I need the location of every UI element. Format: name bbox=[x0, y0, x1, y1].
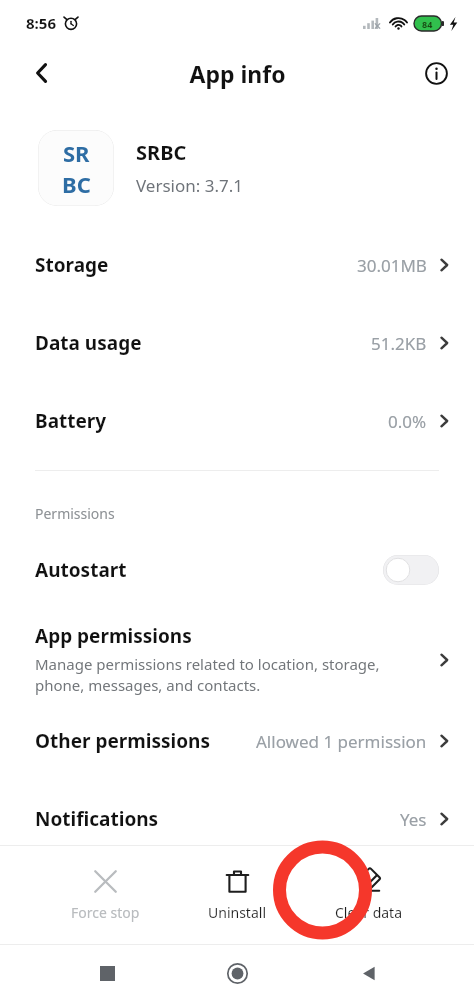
button[interactable]: Back bbox=[18, 49, 66, 97]
button[interactable]: About bbox=[414, 51, 458, 95]
staticText: BC bbox=[62, 169, 91, 199]
staticText: Data usage bbox=[35, 330, 142, 356]
staticText: Notifications bbox=[35, 806, 159, 832]
staticText: Other permissions bbox=[35, 728, 210, 754]
staticText: 0.0% bbox=[388, 410, 427, 433]
staticText: SR bbox=[63, 138, 90, 168]
staticText: 8:56 bbox=[26, 13, 56, 33]
button[interactable]: Battery bbox=[0, 402, 474, 440]
button[interactable]: Clear data bbox=[324, 864, 414, 926]
staticText: Manage permissions related to location, … bbox=[35, 654, 380, 696]
button[interactable]: Back bbox=[344, 949, 392, 997]
staticText: 51.2KB bbox=[371, 332, 427, 355]
button[interactable]: App permissions bbox=[0, 619, 474, 700]
button[interactable]: Home bbox=[213, 949, 261, 997]
button[interactable]: Storage bbox=[0, 246, 474, 284]
staticText: Yes bbox=[400, 808, 427, 831]
staticText: Storage bbox=[35, 252, 109, 278]
staticText: Force stop bbox=[71, 903, 140, 922]
staticText: Battery bbox=[35, 408, 107, 434]
staticText: Uninstall bbox=[208, 903, 266, 922]
staticText: 84 bbox=[422, 18, 433, 30]
button[interactable]: Autostart bbox=[0, 551, 474, 589]
button[interactable]: Uninstall bbox=[192, 864, 282, 926]
staticText: App permissions bbox=[35, 623, 192, 649]
button[interactable]: Other permissions bbox=[0, 722, 474, 760]
button[interactable]: Data usage bbox=[0, 324, 474, 362]
button[interactable]: Notifications bbox=[0, 800, 474, 838]
staticText: 30.01MB bbox=[357, 254, 427, 277]
button[interactable]: Force stop bbox=[60, 864, 150, 926]
button[interactable]: Recents bbox=[83, 949, 131, 997]
staticText: Clear data bbox=[335, 903, 403, 922]
staticText: Version: 3.7.1 bbox=[136, 174, 244, 197]
staticText: App info bbox=[189, 58, 286, 89]
staticText: SRBC bbox=[136, 139, 187, 166]
staticText: Allowed 1 permission bbox=[256, 730, 427, 753]
staticText: Permissions bbox=[35, 504, 115, 523]
staticText: Autostart bbox=[35, 557, 127, 583]
